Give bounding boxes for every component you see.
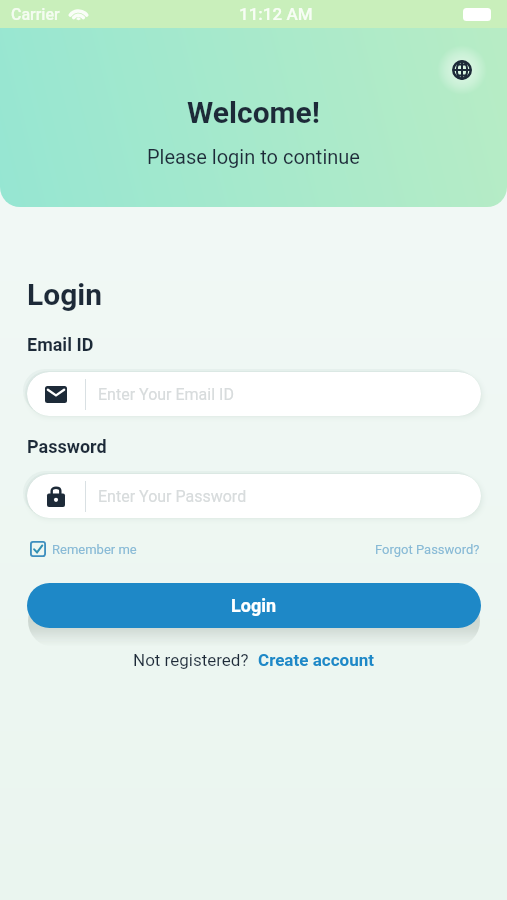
button[interactable]: Enter Your Email ID xyxy=(27,372,481,416)
staticText: Forgot Password? xyxy=(375,542,480,557)
staticText: 11:12 AM xyxy=(239,4,313,24)
staticText: Not registered? xyxy=(133,650,249,670)
staticText: Carrier xyxy=(11,5,60,24)
button[interactable]: Login xyxy=(27,583,481,628)
staticText: Login xyxy=(27,277,103,312)
staticText: Please login to continue xyxy=(147,145,360,168)
staticText: Remember me xyxy=(52,542,137,557)
button[interactable]: Remember me xyxy=(27,538,137,560)
button[interactable]: Create account xyxy=(258,650,374,670)
staticText: Enter Your Email ID xyxy=(98,385,234,404)
button[interactable]: Forgot Password? xyxy=(375,539,480,560)
staticText: Enter Your Password xyxy=(98,487,247,506)
staticText: Email ID xyxy=(27,334,94,355)
button[interactable]: Change language xyxy=(436,44,488,96)
staticText: Login xyxy=(231,595,277,616)
staticText: Create account xyxy=(258,650,374,670)
staticText: Password xyxy=(27,436,107,457)
button[interactable]: Enter Your Password xyxy=(27,474,481,518)
staticText: Welcome! xyxy=(187,95,320,130)
